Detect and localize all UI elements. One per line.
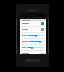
button[interactable] [22,34,44,37]
button[interactable] [20,19,46,21]
button[interactable] [22,40,44,43]
button[interactable]: Enabled [22,22,44,25]
button[interactable]: Enabled [41,22,44,25]
button[interactable]: Enabled [41,28,44,31]
button[interactable] [22,46,44,49]
button[interactable]: Enabled [22,28,44,31]
button[interactable] [22,52,44,54]
